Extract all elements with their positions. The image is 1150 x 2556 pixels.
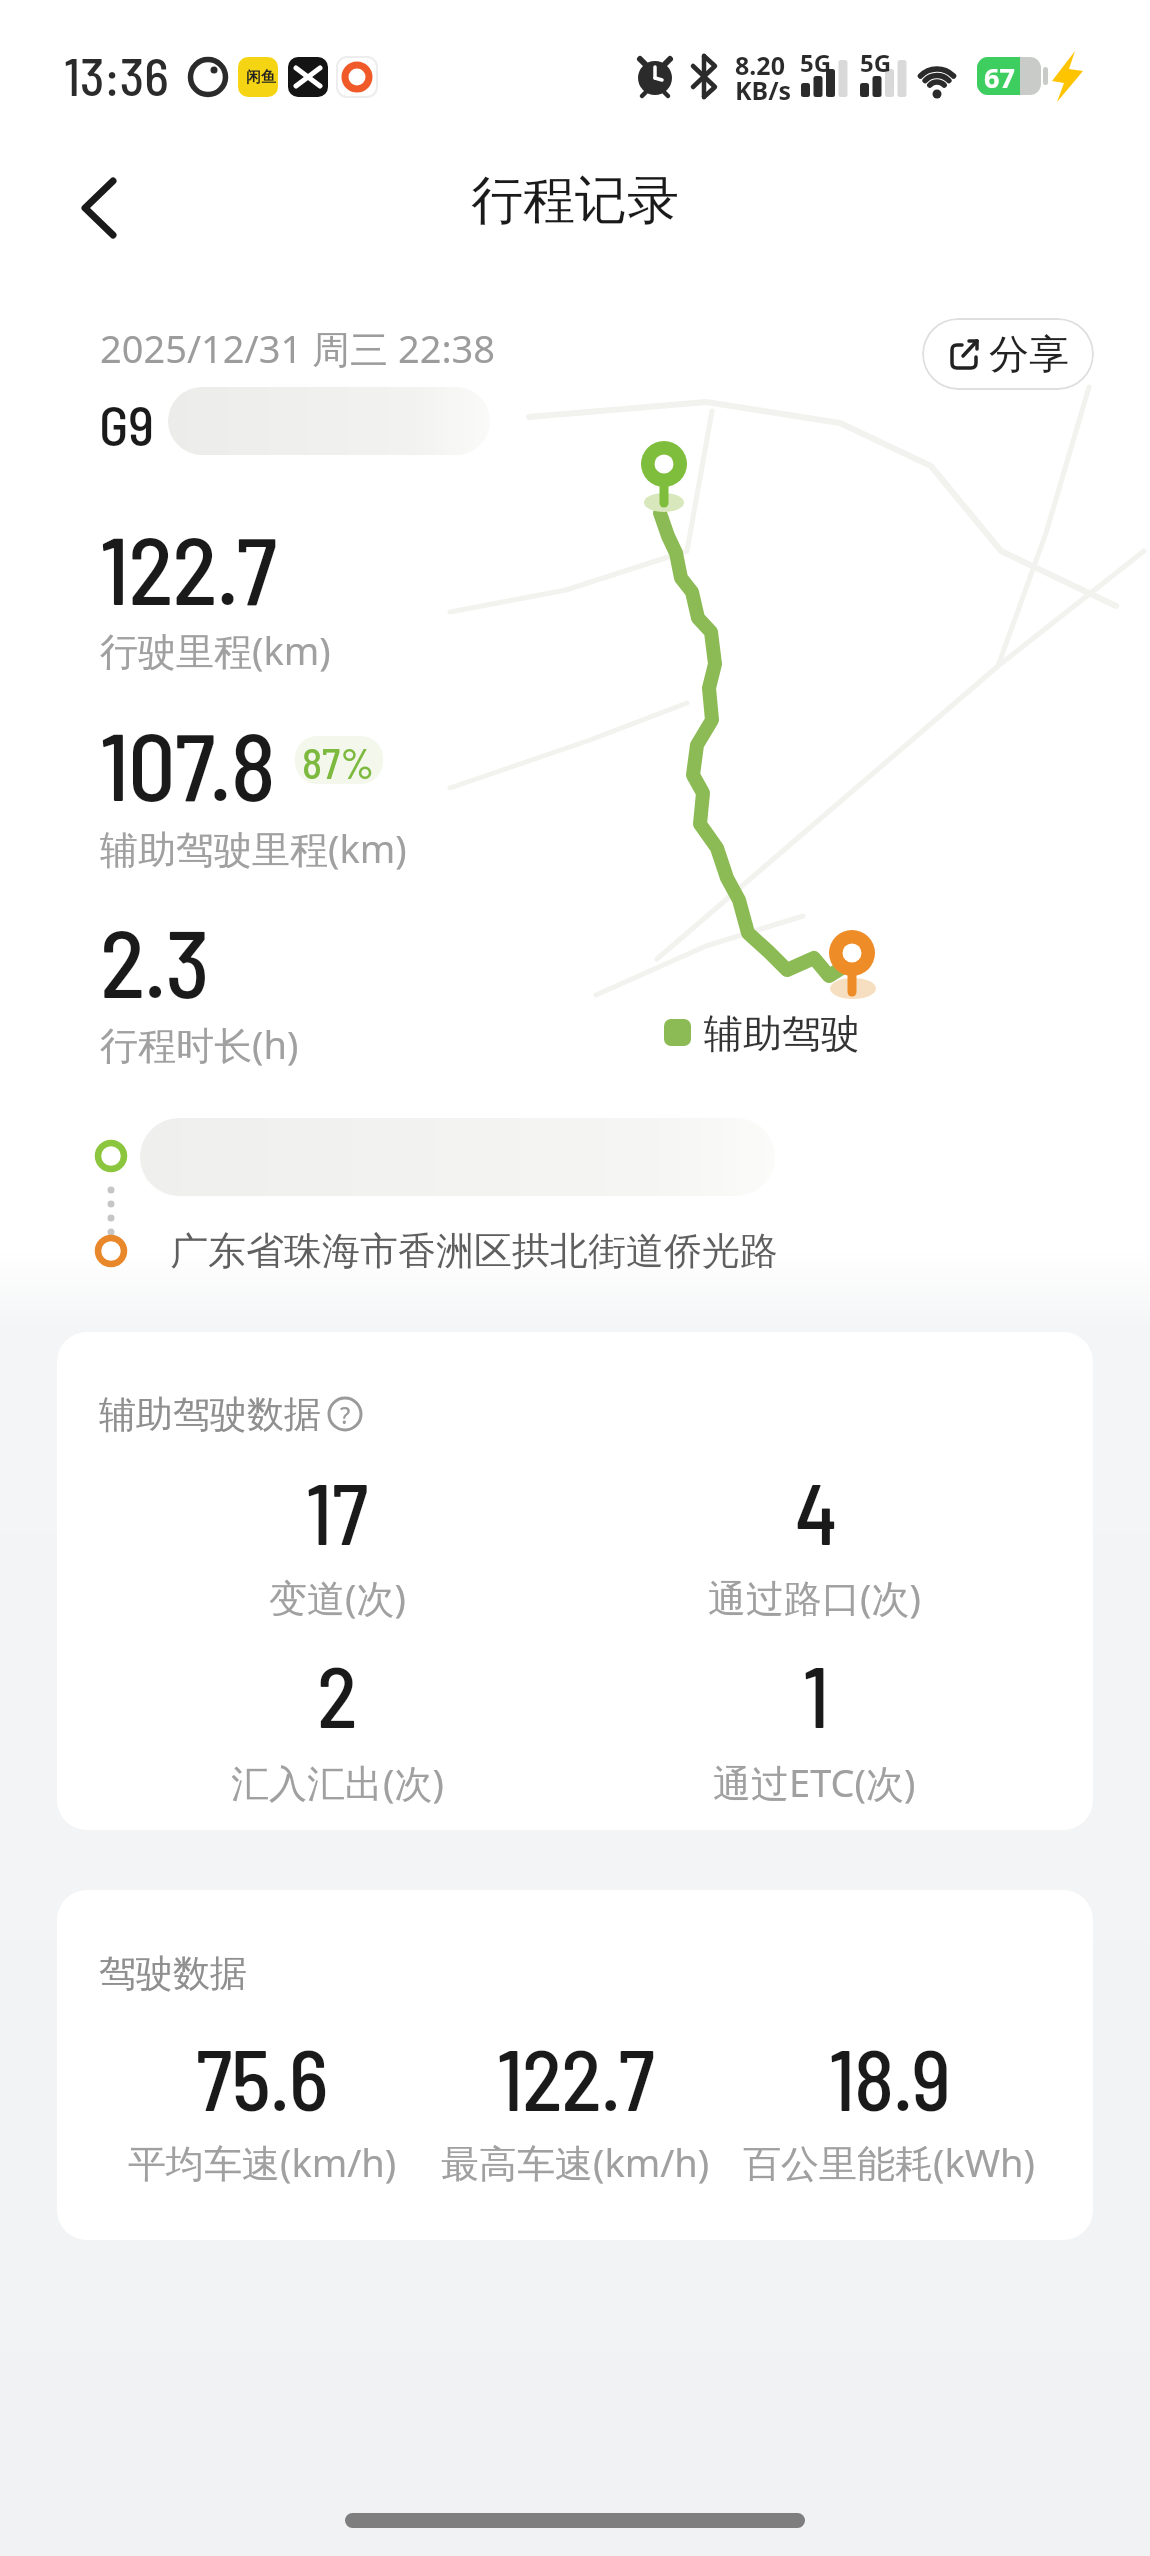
staticText: 通过路口(次) (708, 1571, 921, 1623)
staticText: 最高车速(km/h) (441, 2136, 710, 2188)
staticText: G9 (99, 391, 154, 447)
button[interactable]: 分享 (922, 318, 1094, 390)
staticText: 4 (795, 1461, 838, 1561)
staticText: 行程记录 (471, 168, 679, 234)
staticText: 辅助驾驶 (704, 1009, 860, 1058)
staticText: 87% (302, 737, 375, 783)
staticText: 107.8 (100, 707, 275, 807)
staticText: 百公里能耗(kWh) (743, 2136, 1035, 2188)
staticText: 2025/12/31 周三 22:38 (100, 322, 496, 370)
staticText: 平均车速(km/h) (128, 2136, 397, 2188)
staticText: 2 (317, 1644, 358, 1744)
staticText: 通过ETC(次) (713, 1756, 916, 1808)
staticText: 122.7 (100, 511, 276, 611)
staticText: 122.7 (497, 2027, 654, 2127)
staticText: 辅助驾驶数据 (99, 1391, 321, 1438)
staticText: 闲鱼 (246, 68, 276, 87)
staticText: 5G (860, 46, 892, 72)
staticText: 行程时长(h) (100, 1018, 299, 1070)
staticText: 2.3 (100, 904, 209, 1004)
staticText: 5G (800, 46, 832, 72)
button[interactable] (60, 165, 150, 255)
staticText: 67 (984, 59, 1015, 96)
staticText: 1 (803, 1644, 829, 1744)
staticText: 75.6 (196, 2027, 328, 2127)
staticText: 分享 (989, 329, 1069, 379)
staticText: 驾驶数据 (99, 1950, 247, 1997)
staticText: 变道(次) (269, 1571, 406, 1623)
staticText: KB/s (735, 73, 792, 101)
staticText: 汇入汇出(次) (231, 1756, 444, 1808)
staticText: 17 (306, 1461, 369, 1561)
staticText: ? (340, 1399, 351, 1430)
staticText: 广东省珠海市香洲区拱北街道侨光路 (170, 1227, 778, 1275)
staticText: 8.20 (735, 48, 785, 76)
staticText: 13:36 (64, 44, 169, 96)
staticText: 18.9 (829, 2027, 950, 2127)
staticText: 辅助驾驶里程(km) (100, 822, 407, 874)
staticText: 行驶里程(km) (100, 624, 331, 676)
